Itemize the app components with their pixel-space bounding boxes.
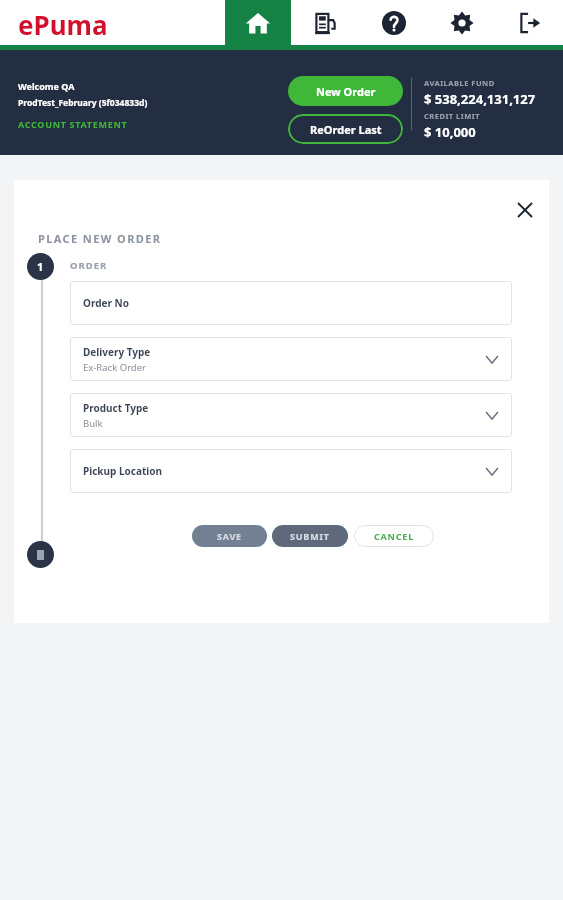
staticText: Welcome QA bbox=[18, 80, 75, 92]
staticText: ProdTest_February (5f034833d) bbox=[18, 97, 148, 109]
staticText: ORDER bbox=[70, 259, 108, 272]
staticText: SUBMIT bbox=[290, 530, 330, 542]
button[interactable]: Delivery Type bbox=[70, 337, 512, 381]
staticText: CANCEL bbox=[374, 530, 414, 542]
button[interactable]: Logout bbox=[497, 0, 563, 45]
staticText: 1 bbox=[37, 259, 44, 274]
button[interactable]: Home bbox=[225, 0, 291, 45]
button[interactable]: Help bbox=[361, 0, 427, 45]
staticText: SAVE bbox=[217, 530, 242, 542]
button[interactable]: SAVE bbox=[192, 525, 267, 547]
staticText: Product Type bbox=[83, 401, 149, 415]
staticText: ACCOUNT STATEMENT bbox=[18, 118, 128, 130]
button[interactable]: Close bbox=[509, 194, 541, 226]
staticText: $ 538,224,131,127 bbox=[424, 90, 536, 108]
staticText: CREDIT LIMIT bbox=[424, 111, 481, 121]
staticText: Ex-Rack Order bbox=[83, 361, 146, 374]
button[interactable]: Product Type bbox=[70, 393, 512, 437]
staticText: AVAILABLE FUND bbox=[424, 78, 495, 88]
staticText: New Order bbox=[316, 84, 376, 99]
staticText: ePuma bbox=[18, 7, 108, 42]
staticText: Bulk bbox=[83, 417, 103, 430]
staticText: Delivery Type bbox=[83, 345, 151, 359]
button[interactable]: Fuel bbox=[293, 0, 359, 45]
button[interactable]: ReOrder Last bbox=[288, 114, 403, 144]
button[interactable]: Settings bbox=[429, 0, 495, 45]
button[interactable]: Pickup Location bbox=[70, 449, 512, 493]
button[interactable]: New Order bbox=[288, 76, 403, 106]
button[interactable]: SUBMIT bbox=[272, 525, 348, 547]
staticText: Pickup Location bbox=[83, 464, 163, 478]
staticText: PLACE NEW ORDER bbox=[38, 231, 162, 246]
staticText: $ 10,000 bbox=[424, 123, 476, 141]
button[interactable]: CANCEL bbox=[354, 525, 434, 547]
staticText: ReOrder Last bbox=[310, 122, 382, 137]
staticText: Order No bbox=[83, 296, 129, 310]
button[interactable]: ACCOUNT STATEMENT bbox=[18, 118, 128, 130]
button[interactable]: Order No bbox=[70, 281, 512, 325]
